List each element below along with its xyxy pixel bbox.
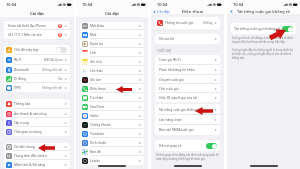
- staticText: Bản đồ: [90, 150, 138, 154]
- button[interactable]: La bàn: [80, 156, 144, 165]
- staticText: Wi-Fi: [14, 58, 44, 62]
- staticText: La bàn: [90, 159, 138, 163]
- staticText: Âm thanh & cảm ứng: [14, 112, 64, 116]
- staticText: 10:04: [157, 2, 168, 7]
- button[interactable]: Di động: [4, 74, 70, 83]
- staticText: Safari: [90, 114, 138, 118]
- staticText: Hỗ trợ quay số: [159, 144, 206, 148]
- staticText: CUỘC GỌI: [157, 49, 172, 53]
- button[interactable]: Thông tin cuộc gọi: [155, 17, 220, 29]
- button[interactable]: Bluetooth: [4, 65, 70, 74]
- staticText: Dịch thuật: [90, 141, 138, 145]
- button[interactable]: Hiện ID người gọi của tôi: [155, 93, 220, 102]
- staticText: Mật khẩu: [90, 24, 138, 28]
- staticText: Báo cáo SMS&cuộc gọi: [159, 128, 214, 132]
- button[interactable]: Hỗ trợ quay số: [155, 140, 220, 151]
- button[interactable]: Tắt tiếng cuộc gọi không rõ: [231, 23, 296, 34]
- staticText: Tắt tiếng cuộc gọi không rõ: [159, 108, 214, 112]
- button[interactable]: Tập trung: [4, 118, 70, 127]
- staticText: Cuộc gọi từ các số không có trong danh b…: [232, 36, 296, 44]
- button[interactable]: Wi-Fi: [4, 55, 70, 65]
- staticText: Chế độ máy bay: [14, 48, 56, 52]
- button[interactable]: Âm thanh & cảm ứng: [4, 109, 70, 118]
- staticText: MEDIA-Quan: [44, 58, 63, 62]
- staticText: 10:04: [6, 2, 17, 7]
- button[interactable]: Chứng khoán: [80, 120, 144, 129]
- staticText: Cài đặt: [30, 11, 44, 16]
- staticText: Cài đặt chung: [14, 145, 64, 149]
- staticText: Lời nhắc: [90, 69, 138, 73]
- button[interactable]: Màn hình & Độ sáng: [4, 160, 70, 169]
- button[interactable]: Dịch thuật: [80, 138, 144, 147]
- staticText: Di động: [14, 77, 58, 81]
- button[interactable]: Mail: [80, 30, 144, 39]
- button[interactable]: Lặn hãng chặn: [155, 115, 220, 125]
- button[interactable]: Tin nhắn: [80, 93, 144, 102]
- staticText: 1: [59, 33, 61, 37]
- button[interactable]: Bản đồ: [80, 147, 144, 156]
- button[interactable]: Back: [153, 9, 170, 14]
- staticText: Tin nhắn: [90, 96, 138, 100]
- staticText: Lịch: [90, 51, 138, 55]
- button[interactable]: iOS 17.5.1 Nên cài sẵn: [4, 30, 70, 39]
- staticText: Không kết nối: [42, 68, 63, 72]
- staticText: Điện thoại: [90, 87, 138, 91]
- other: Back: [153, 10, 156, 14]
- staticText: Tắt tiếng cuộc gọi không rõ: [237, 9, 290, 14]
- staticText: Translate: [90, 132, 138, 136]
- staticText: Thông báo: [14, 102, 64, 106]
- staticText: Tắt: [58, 77, 63, 81]
- button[interactable]: Safari: [80, 111, 144, 120]
- button[interactable]: Trung tâm điều khiển: [4, 151, 70, 160]
- button[interactable]: Chờ cuộc gọi: [155, 84, 220, 93]
- staticText: Danh bạ: [90, 42, 138, 46]
- staticText: Phản hồi bằng tin nhắn: [159, 68, 214, 72]
- staticText: Mail: [90, 33, 138, 37]
- staticText: Hiện ID người gọi của tôi: [159, 96, 214, 100]
- button[interactable]: Hoàn tất thiết lập iPhone: [4, 21, 70, 30]
- button[interactable]: Danh bạ: [80, 39, 144, 48]
- button[interactable]: Cài đặt chung: [4, 143, 70, 151]
- staticText: Tập trung: [14, 121, 64, 125]
- staticText: Ghi âm: [90, 78, 138, 82]
- staticText: Hoàn tất thiết lập iPhone: [8, 24, 58, 28]
- staticText: Màn hình & Độ sáng: [14, 163, 64, 167]
- staticText: Cài đặt: [105, 11, 119, 16]
- staticText: Thông tin cuộc gọi: [165, 21, 203, 25]
- staticText: Chuyển cuộc gọi: [159, 78, 214, 82]
- staticText: Không kết nối: [42, 86, 63, 90]
- button[interactable]: Mật khẩu: [80, 22, 144, 30]
- staticText: Cuộc gọi Wi-Fi: [159, 58, 214, 62]
- staticText: FaceTime: [90, 105, 138, 109]
- button[interactable]: Điện thoại: [80, 84, 144, 93]
- button[interactable]: Cuộc gọi Wi-Fi: [155, 55, 220, 65]
- staticText: 10:04: [233, 2, 244, 7]
- button[interactable]: Thời gian sử dụng: [4, 127, 70, 136]
- button[interactable]: Phản hồi bằng tin nhắn: [155, 65, 220, 75]
- button[interactable]: Translate: [80, 129, 144, 138]
- staticText: Điện thoại: [182, 9, 204, 14]
- button[interactable]: Chuyển cuộc gọi: [155, 75, 220, 84]
- button[interactable]: Báo cáo SMS&cuộc gọi: [155, 125, 220, 135]
- staticText: VPN: [14, 86, 42, 90]
- staticText: 1: [59, 24, 61, 28]
- staticText: Bluetooth: [14, 68, 42, 72]
- button[interactable]: Chế độ máy bay: [4, 45, 70, 55]
- staticText: Cài đặt: [157, 9, 170, 14]
- staticText: Chứng khoán: [90, 123, 138, 127]
- button[interactable]: Lịch: [80, 48, 144, 57]
- button[interactable]: Lời nhắc: [80, 66, 144, 75]
- staticText: Thời gian sử dụng: [14, 130, 64, 134]
- button[interactable]: VPN: [4, 83, 70, 92]
- button[interactable]: Số của tôi: [155, 34, 220, 44]
- button[interactable]: Ghi chú: [80, 57, 144, 66]
- button[interactable]: Tắt tiếng cuộc gọi không rõ: [155, 104, 220, 115]
- button[interactable]: Back: [230, 9, 233, 14]
- staticText: Hỗ trợ quay số tự động xác định mã vùng …: [156, 153, 219, 161]
- staticText: Số của tôi: [159, 37, 214, 41]
- button[interactable]: Thông báo: [4, 99, 70, 109]
- button[interactable]: Ghi âm: [80, 75, 144, 84]
- button[interactable]: FaceTime: [80, 102, 144, 111]
- staticText: Tắt tiếng cuộc gọi không rõ: [234, 26, 282, 31]
- staticText: Ghi chú: [90, 60, 138, 64]
